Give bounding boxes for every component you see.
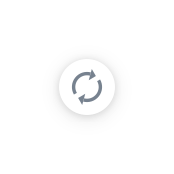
button[interactable]: Refresh — [59, 59, 115, 115]
